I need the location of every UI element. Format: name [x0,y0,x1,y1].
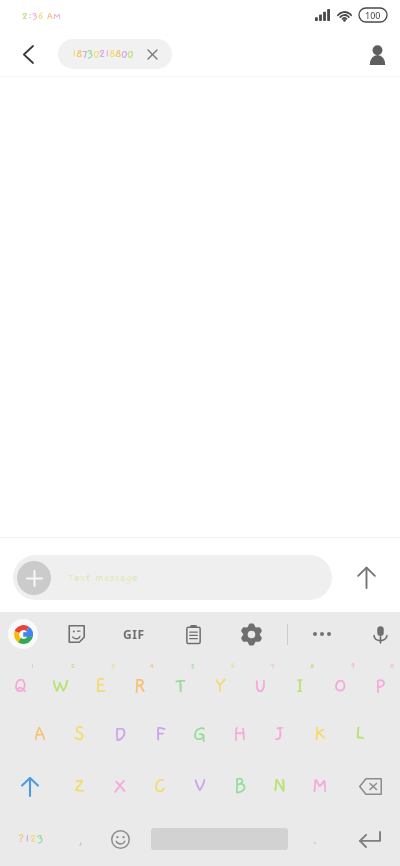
staticText: O [334,675,347,697]
button[interactable]: GIF [114,614,154,654]
button[interactable]: G [180,708,220,760]
staticText: 0 [121,48,127,60]
button[interactable]: T [160,656,200,708]
staticText: J [276,723,284,745]
staticText: R [134,675,146,697]
button[interactable]: Add attachment [17,561,51,595]
button[interactable]: O [320,656,360,708]
button[interactable]: F [140,708,180,760]
staticText: , [79,830,83,848]
staticText: L [355,723,365,745]
button[interactable]: S [60,708,100,760]
staticText: 1 [31,662,35,669]
staticText: 1 [105,48,109,60]
staticText: I [296,675,304,697]
button[interactable]: Z [60,760,100,812]
button[interactable]: Shift [0,760,60,812]
staticText: 1 [72,48,76,60]
staticText: 3 [111,662,115,669]
staticText: Q [14,675,27,697]
staticText: G [193,723,207,745]
staticText: 3 [32,11,38,22]
staticText: W [52,675,69,697]
staticText: s [110,572,115,584]
button[interactable]: X [100,760,140,812]
staticText: A [34,723,46,745]
staticText: V [194,775,206,797]
button[interactable]: A [20,708,60,760]
staticText: 3 [87,48,93,60]
staticText: 5 [191,662,195,669]
button[interactable]: Emoji [100,812,140,866]
button[interactable]: I [280,656,320,708]
staticText: F [155,723,166,745]
button[interactable]: N [260,760,300,812]
button[interactable]: 1 [58,39,172,69]
button[interactable]: H [220,708,260,760]
staticText: H [233,723,247,745]
staticText: D [114,723,127,745]
staticText: S [74,723,86,745]
staticText: 7 [82,48,87,60]
staticText: N [273,775,287,797]
button[interactable]: Backspace [340,760,400,812]
staticText: x [80,572,86,584]
staticText: A [47,11,53,22]
button[interactable]: U [240,656,280,708]
staticText: e [104,572,110,584]
staticText: U [254,675,267,697]
staticText: 8 [109,48,115,60]
staticText: e [74,572,80,584]
staticText: t [86,572,90,584]
staticText: 3 [37,833,44,845]
staticText: Z [74,775,86,797]
staticText: E [95,675,106,697]
button[interactable]: E [80,656,120,708]
staticText: . [313,830,317,848]
button[interactable]: Settings [231,614,271,654]
button[interactable]: L [340,708,380,760]
staticText: 8 [310,662,315,669]
staticText: C [154,775,167,797]
staticText: 2 [71,662,75,669]
staticText: 6 [38,11,43,22]
button[interactable]: ? [0,812,62,866]
staticText: 8 [76,48,82,60]
button[interactable]: B [220,760,260,812]
button[interactable]: Google search [8,619,38,649]
button[interactable]: C [140,760,180,812]
staticText: B [234,775,247,797]
button[interactable]: P [360,656,400,708]
staticText: e [132,572,138,584]
button[interactable]: M [300,760,340,812]
staticText: 9 [351,662,355,669]
button[interactable]: D [100,708,140,760]
button[interactable]: R [120,656,160,708]
button[interactable]: More options [302,614,342,654]
staticText: 0 [93,48,99,60]
button[interactable]: Send [344,555,389,600]
staticText: a [120,572,126,584]
staticText: X [114,775,127,797]
button[interactable]: Enter [345,812,395,866]
button[interactable]: Clipboard [173,614,213,654]
button[interactable]: Contact details [357,34,397,74]
button[interactable]: Y [200,656,240,708]
staticText: g [126,572,132,584]
button[interactable]: K [300,708,340,760]
button[interactable]: Voice input [360,614,400,654]
staticText: GIF [123,626,145,642]
button[interactable]: Stickers [56,614,96,654]
button[interactable]: Back [8,34,48,74]
button[interactable]: W [40,656,80,708]
staticText: 1 [25,833,30,845]
button[interactable]: Add attachment [13,555,332,600]
button[interactable]: V [180,760,220,812]
button[interactable]: Q [0,656,40,708]
staticText: T [175,675,186,697]
button[interactable]: J [260,708,300,760]
